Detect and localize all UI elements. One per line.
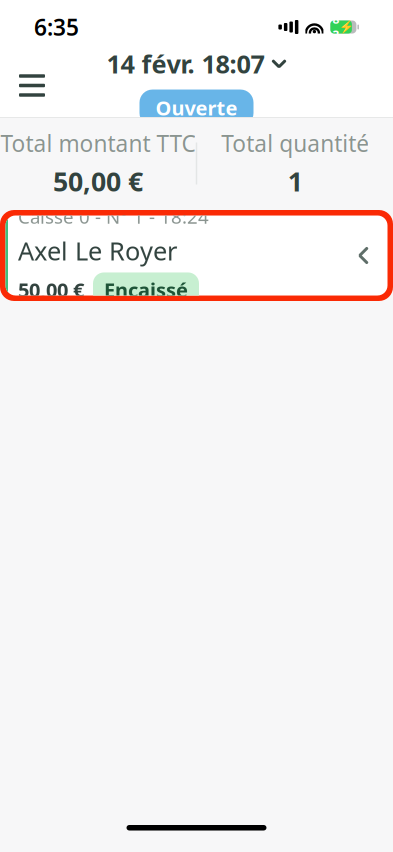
staticText: Caisse 0 - N° 1 - 18:24 [18,204,209,229]
staticText: Ouverte [155,94,237,121]
staticText: Encaissé [104,276,188,303]
staticText: Total montant TTC [0,128,195,158]
staticText: 83 [332,11,339,43]
staticText: ⚡ [339,20,354,34]
button[interactable]: 14 févr. 18:07 [102,45,290,82]
button[interactable]: Caisse 0 - N° 1 - 18:24 [0,210,393,301]
staticText: Axel Le Royer [18,234,177,267]
button[interactable]: Menu [10,63,54,107]
button[interactable]: Ouverte [139,89,253,126]
staticText: Total quantité [221,128,369,158]
staticText: 6:35 [34,12,79,42]
staticText: 50,00 € [18,276,84,303]
staticText: 14 févr. 18:07 [106,47,264,80]
staticText: 50,00 € [53,163,143,199]
staticText: 1 [288,163,303,199]
